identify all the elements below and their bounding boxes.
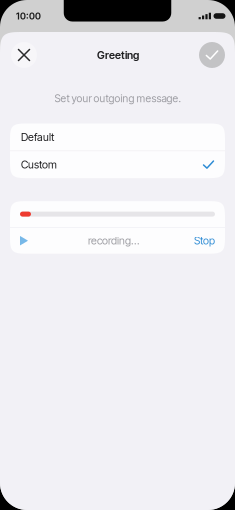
button[interactable]: Stop [194,234,215,247]
button[interactable]: Custom [10,151,225,178]
staticText: Custom [21,158,57,171]
staticText: Default [21,130,54,143]
button[interactable]: Play [20,229,34,252]
staticText: 10:00 [16,10,41,22]
staticText: Greeting [97,48,139,61]
staticText: Stop [194,234,215,247]
staticText: recording... [88,234,140,247]
button[interactable]: Default [10,123,225,150]
button[interactable]: Done [199,42,225,68]
staticText: Set your outgoing message. [54,92,180,105]
button[interactable]: Close [11,42,37,68]
